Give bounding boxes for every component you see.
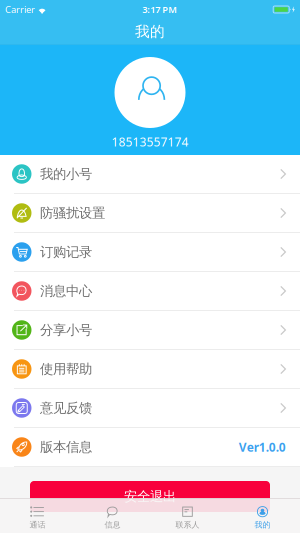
button[interactable]: 意见反馈 bbox=[0, 389, 300, 428]
button[interactable]: 我的 bbox=[225, 498, 300, 533]
staticText: 安全退出 bbox=[124, 488, 176, 505]
button[interactable]: 防骚扰设置 bbox=[0, 194, 300, 233]
staticText: 意见反馈 bbox=[40, 400, 92, 416]
staticText: 联系人 bbox=[175, 520, 199, 530]
staticText: 使用帮助 bbox=[40, 361, 92, 377]
button[interactable]: 使用帮助 bbox=[0, 350, 300, 389]
staticText: 3:17 PM bbox=[142, 3, 177, 16]
staticText: 信息 bbox=[104, 520, 120, 530]
staticText: 防骚扰设置 bbox=[40, 205, 105, 221]
staticText: 我的小号 bbox=[40, 166, 92, 182]
staticText: 分享小号 bbox=[40, 322, 92, 338]
button[interactable]: 消息中心 bbox=[0, 272, 300, 311]
staticText: 18513557174 bbox=[111, 134, 188, 150]
staticText: 消息中心 bbox=[40, 283, 92, 299]
button[interactable]: 订购记录 bbox=[0, 233, 300, 272]
button[interactable]: 我的 bbox=[0, 19, 300, 44]
staticText: Carrier bbox=[5, 3, 35, 16]
staticText: Ver1.0.0 bbox=[239, 439, 286, 455]
button[interactable]: 信息 bbox=[75, 498, 150, 533]
button[interactable]: 分享小号 bbox=[0, 311, 300, 350]
staticText: 我的 bbox=[135, 22, 165, 40]
button[interactable]: 安全退出 bbox=[30, 481, 270, 512]
button[interactable]: 通话 bbox=[0, 498, 75, 533]
staticText: 版本信息 bbox=[40, 439, 92, 455]
button[interactable]: 我的小号 bbox=[0, 155, 300, 194]
staticText: 订购记录 bbox=[40, 244, 92, 260]
button[interactable]: 版本信息 bbox=[0, 428, 300, 467]
button[interactable]: 联系人 bbox=[150, 498, 225, 533]
staticText: 我的 bbox=[254, 520, 270, 530]
staticText: 通话 bbox=[29, 520, 45, 530]
